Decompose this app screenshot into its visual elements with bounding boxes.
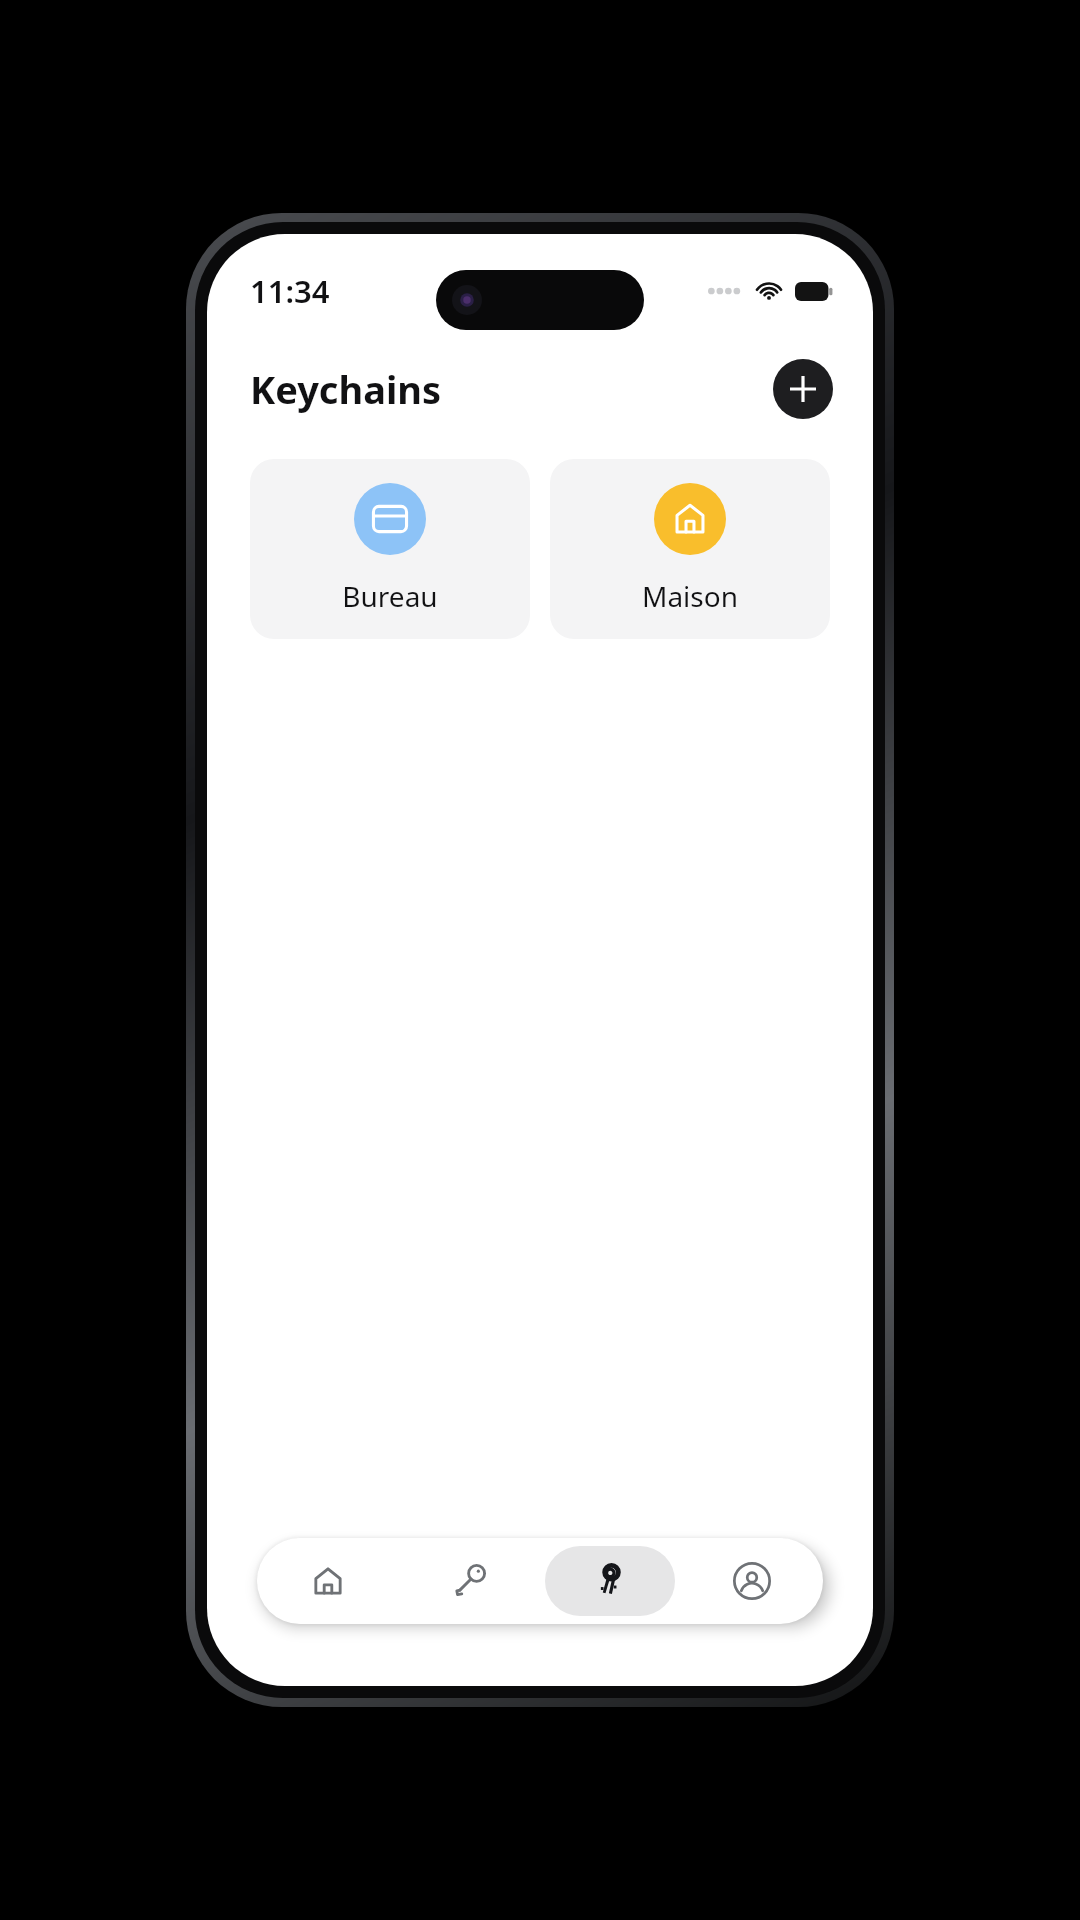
button[interactable]: Maison [550,459,830,639]
button[interactable]: Home [263,1546,392,1616]
button[interactable]: Keys [404,1546,533,1616]
staticText: Bureau [342,577,438,615]
button[interactable]: Keychains [545,1546,675,1616]
button[interactable]: Profile [687,1546,817,1616]
button[interactable]: Bureau [250,459,530,639]
button[interactable]: Add keychain [773,359,833,419]
staticText: Keychains [250,363,442,415]
staticText: 11:34 [250,270,330,312]
staticText: Maison [642,577,738,615]
